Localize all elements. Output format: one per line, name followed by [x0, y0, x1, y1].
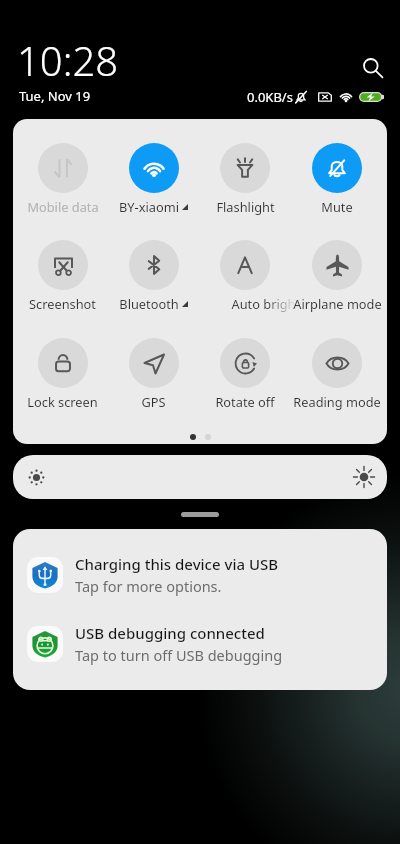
- staticText: Tue, Nov 19: [19, 87, 91, 105]
- staticText: Charging this device via USB: [75, 554, 279, 574]
- staticText: 0.0KB/s: [247, 88, 293, 106]
- staticText: 10:28: [17, 33, 119, 87]
- staticText: Reading mode: [293, 393, 381, 410]
- button[interactable]: USB debugging connected: [13, 618, 387, 670]
- staticText: Tap for more options.: [75, 576, 222, 596]
- staticText: Airplane mode: [293, 295, 382, 312]
- button[interactable]: Flashlight: [199, 143, 291, 215]
- button[interactable]: Bluetooth: [108, 240, 199, 312]
- button[interactable]: Airplane mode: [291, 240, 383, 312]
- button[interactable]: Reading mode: [291, 338, 383, 410]
- staticText: Mute: [321, 198, 353, 215]
- staticText: Rotate off: [215, 393, 275, 410]
- button[interactable]: Lock screen: [17, 338, 108, 410]
- staticText: Lock screen: [27, 393, 98, 410]
- staticText: Screenshot: [29, 295, 96, 312]
- button[interactable]: BY-xiaomi: [108, 143, 199, 215]
- staticText: Tap to turn off USB debugging: [75, 645, 283, 665]
- staticText: Auto brigh: [231, 295, 296, 312]
- staticText: Flashlight: [216, 198, 275, 215]
- button[interactable]: Auto brigh: [199, 240, 291, 312]
- button[interactable]: Rotate off: [199, 338, 291, 410]
- button[interactable]: Mobile data: [17, 143, 108, 215]
- staticText: Mobile data: [27, 198, 99, 215]
- button[interactable]: Search: [358, 53, 388, 83]
- button[interactable]: Screenshot: [17, 240, 108, 312]
- button[interactable]: GPS: [108, 338, 199, 410]
- button[interactable]: Mute: [291, 143, 383, 215]
- button[interactable]: Brightness: [13, 455, 387, 499]
- staticText: GPS: [141, 393, 166, 410]
- staticText: USB debugging connected: [75, 623, 265, 643]
- staticText: BY-xiaomi: [119, 198, 179, 215]
- button[interactable]: Charging this device via USB: [13, 549, 387, 601]
- staticText: Bluetooth: [119, 295, 179, 312]
